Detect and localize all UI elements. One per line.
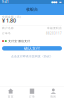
staticText: 商户名称	[2, 26, 14, 30]
staticText: 收银台	[26, 7, 38, 12]
button[interactable]: 确认支付	[2, 46, 62, 50]
staticText: ¥ 1.80	[2, 17, 16, 24]
staticText: 我的	[50, 95, 56, 98]
staticText: 幸福便利店	[47, 26, 62, 30]
staticText: 9:41	[2, 0, 9, 4]
button[interactable]: 我的	[43, 86, 64, 100]
staticText: 首页	[8, 95, 14, 98]
staticText: 交易金额（元）	[2, 15, 23, 19]
staticText: 订单号	[2, 32, 11, 35]
button[interactable]: 订单	[21, 86, 43, 100]
staticText: 支付宝·微信支付	[8, 39, 30, 43]
staticText: 确认支付	[24, 46, 40, 51]
staticText: 88203117	[46, 32, 62, 35]
staticText: ●●● ▬	[51, 0, 62, 3]
staticText: 订单	[29, 95, 35, 98]
button[interactable]: 首页	[0, 86, 21, 100]
staticText: 点击支付即表示您同意《协议》	[11, 55, 53, 58]
